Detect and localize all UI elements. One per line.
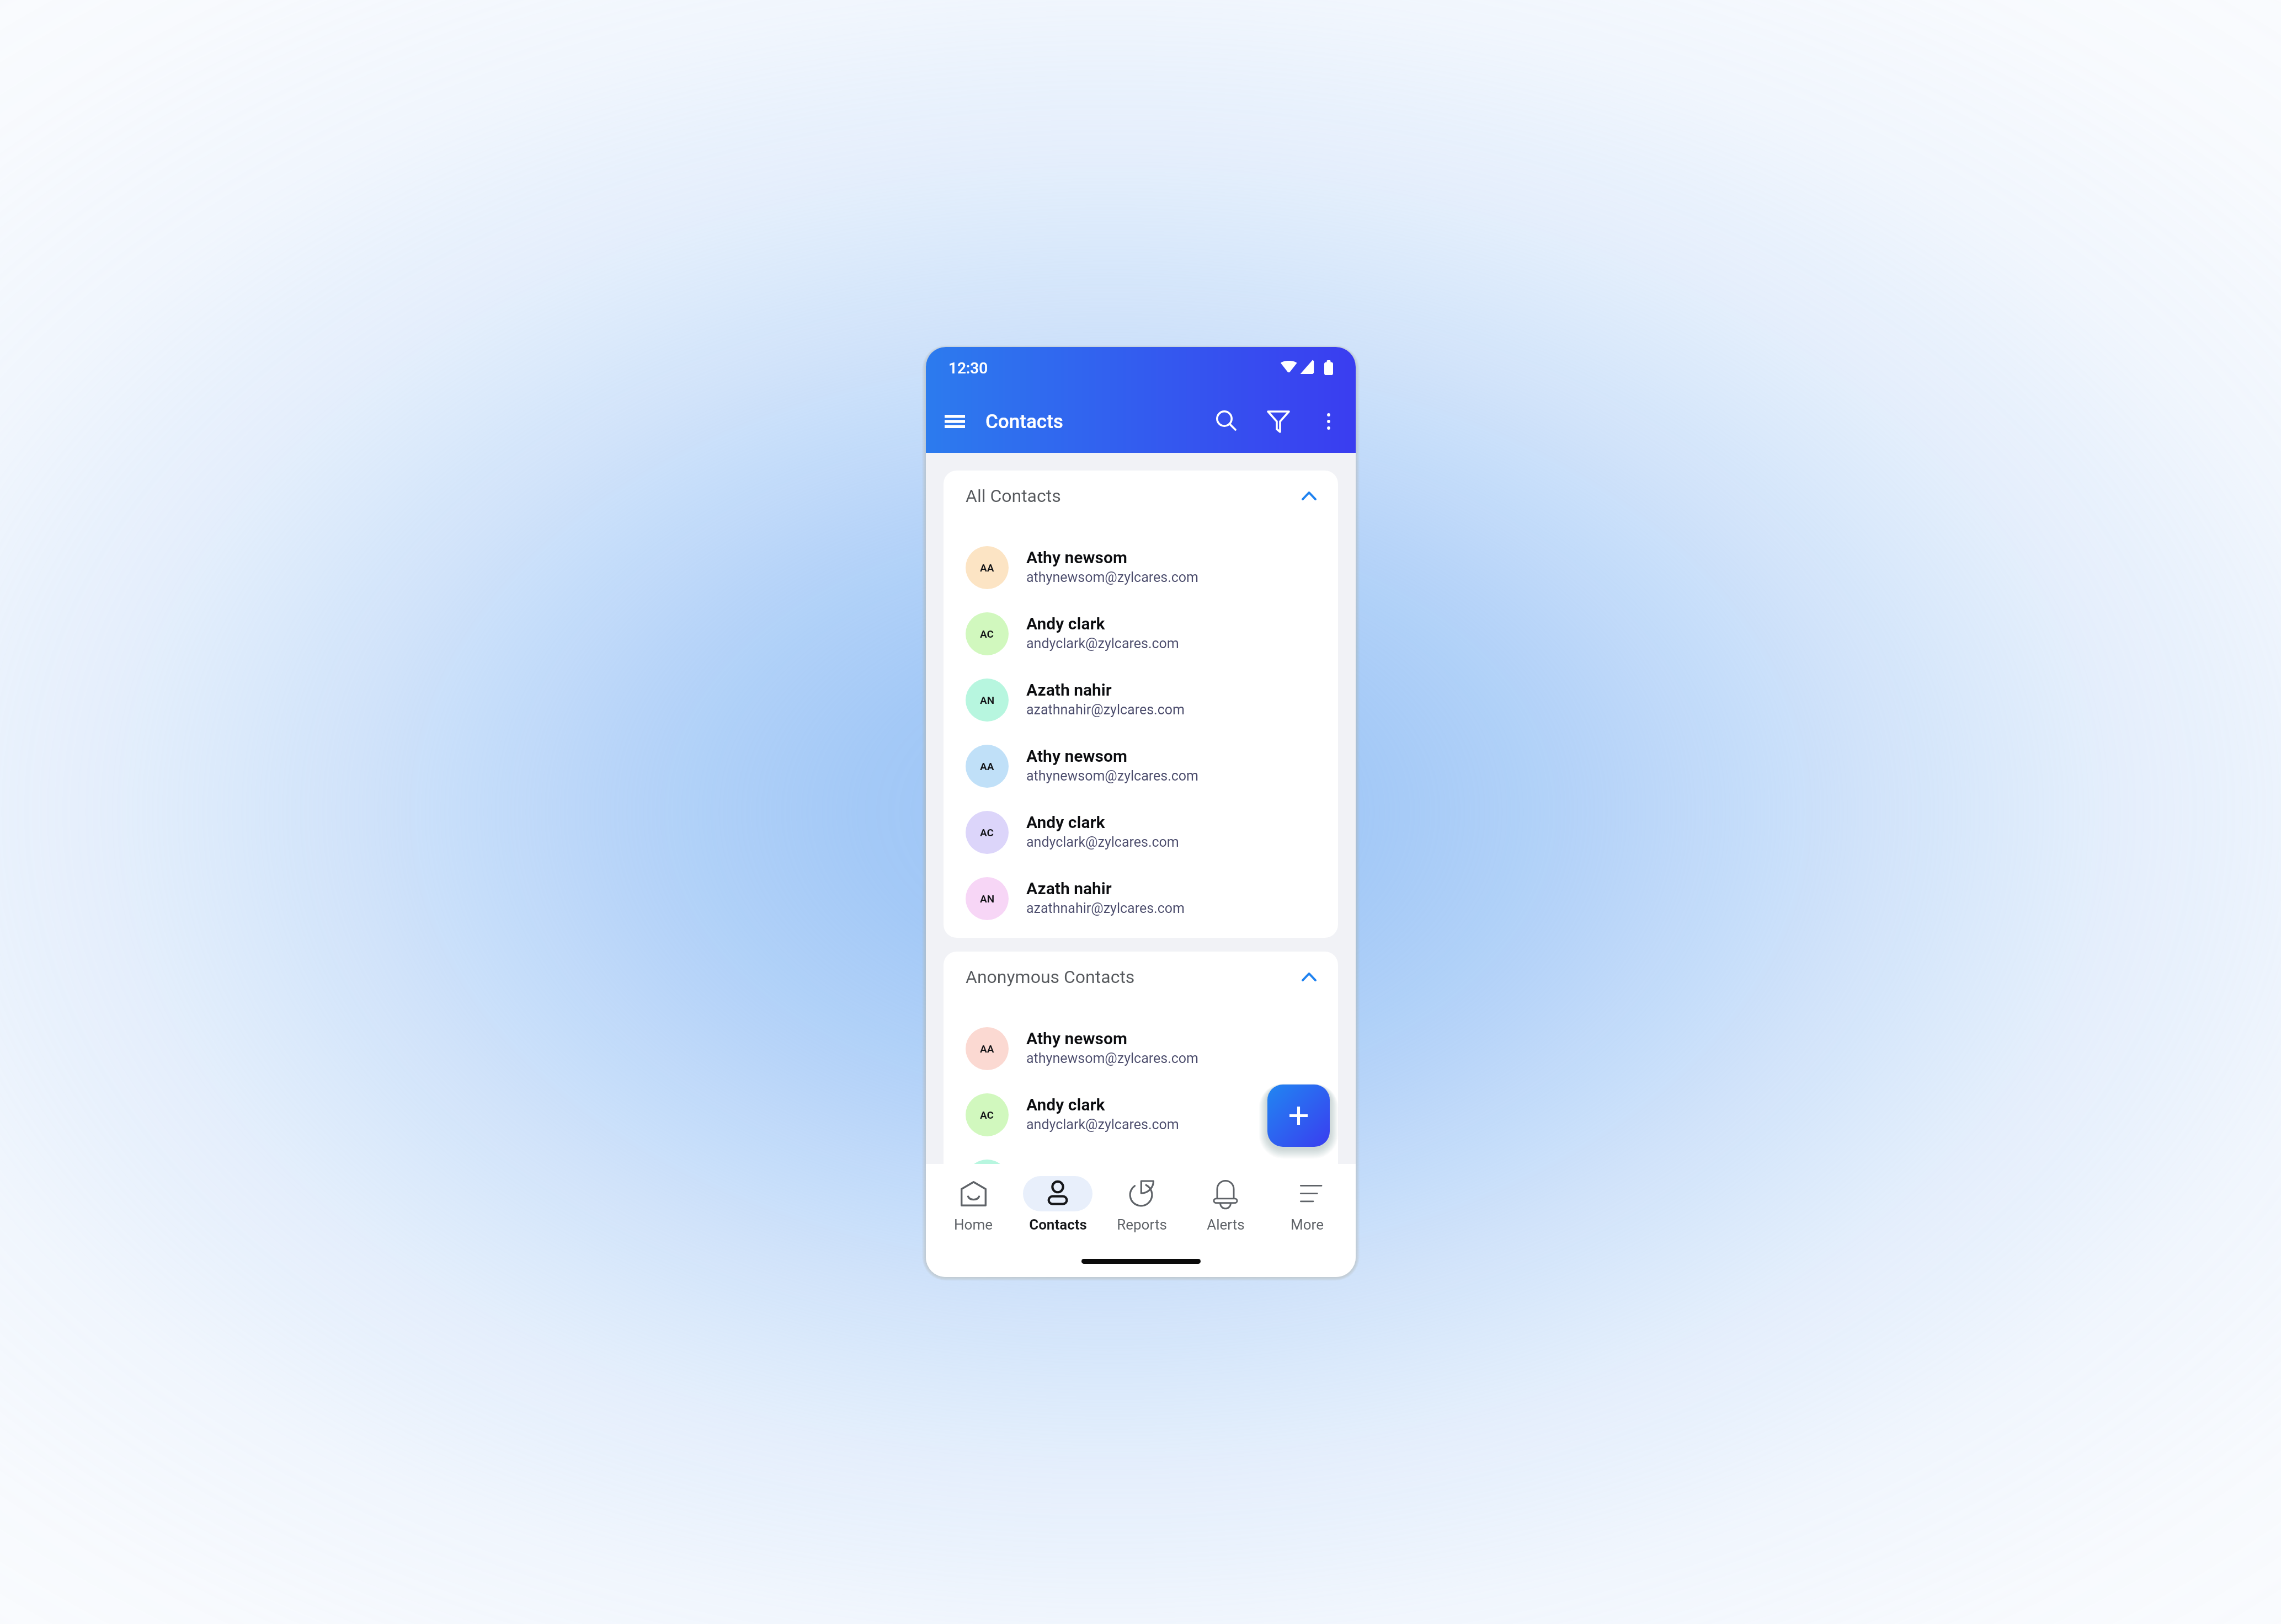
- button[interactable]: AA: [944, 535, 1338, 601]
- button[interactable]: More: [1265, 1164, 1349, 1252]
- staticText: Azath nahir: [1026, 680, 1112, 699]
- button[interactable]: AN: [944, 667, 1338, 733]
- staticText: More: [1291, 1216, 1324, 1233]
- button[interactable]: All Contacts: [944, 471, 1338, 521]
- button[interactable]: Home: [931, 1164, 1015, 1252]
- staticText: AA: [980, 1043, 994, 1055]
- staticText: AN: [980, 694, 995, 706]
- staticText: athynewsom@zylcares.com: [1026, 768, 1199, 784]
- staticText: azathnahir@zylcares.com: [1026, 900, 1185, 916]
- staticText: Andy clark: [1026, 614, 1105, 633]
- button[interactable]: Add contact: [1267, 1085, 1330, 1147]
- staticText: AN: [980, 893, 995, 905]
- button[interactable]: More options: [1309, 402, 1349, 441]
- button[interactable]: Filter: [1259, 402, 1298, 441]
- button[interactable]: AN: [944, 1148, 1338, 1164]
- button[interactable]: Reports: [1100, 1164, 1184, 1252]
- staticText: 12:30: [948, 359, 988, 377]
- button[interactable]: AA: [944, 1016, 1338, 1082]
- button[interactable]: Search: [1207, 402, 1246, 441]
- staticText: Athy newsom: [1026, 746, 1127, 766]
- staticText: AC: [980, 628, 994, 640]
- button[interactable]: AC: [944, 601, 1338, 667]
- button[interactable]: AC: [944, 1082, 1338, 1148]
- staticText: andyclark@zylcares.com: [1026, 834, 1179, 850]
- staticText: Athy newsom: [1026, 548, 1127, 567]
- staticText: athynewsom@zylcares.com: [1026, 569, 1199, 585]
- staticText: Alerts: [1207, 1216, 1245, 1233]
- button[interactable]: Alerts: [1184, 1164, 1267, 1252]
- staticText: AC: [980, 826, 994, 838]
- staticText: All Contacts: [966, 485, 1061, 506]
- staticText: AC: [980, 1109, 994, 1121]
- button[interactable]: AC: [944, 799, 1338, 866]
- button[interactable]: Contacts: [1016, 1164, 1100, 1252]
- staticText: AA: [980, 760, 994, 772]
- button[interactable]: Menu: [935, 402, 974, 441]
- button[interactable]: Anonymous Contacts: [944, 952, 1338, 1002]
- staticText: Athy newsom: [1026, 1029, 1127, 1048]
- button[interactable]: AA: [944, 733, 1338, 799]
- staticText: Contacts: [1029, 1216, 1087, 1233]
- button[interactable]: AN: [944, 866, 1338, 932]
- staticText: Andy clark: [1026, 1095, 1105, 1114]
- staticText: AA: [980, 562, 994, 574]
- staticText: athynewsom@zylcares.com: [1026, 1050, 1199, 1066]
- staticText: Reports: [1117, 1216, 1167, 1233]
- staticText: andyclark@zylcares.com: [1026, 1116, 1179, 1132]
- staticText: Contacts: [985, 410, 1063, 433]
- staticText: andyclark@zylcares.com: [1026, 635, 1179, 651]
- staticText: Andy clark: [1026, 813, 1105, 832]
- staticText: Anonymous Contacts: [966, 966, 1135, 987]
- staticText: Azath nahir: [1026, 879, 1112, 898]
- staticText: Home: [954, 1216, 993, 1233]
- staticText: azathnahir@zylcares.com: [1026, 702, 1185, 718]
